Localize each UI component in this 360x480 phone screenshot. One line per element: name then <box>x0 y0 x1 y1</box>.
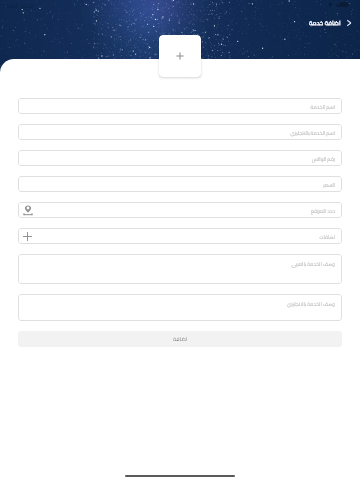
staticText: اسم الخدمة بالانجليزي <box>290 128 335 137</box>
staticText: رقم الواتس <box>311 154 335 163</box>
staticText: حدد الموقع <box>310 206 335 215</box>
staticText: اسم الخدمة <box>310 102 335 111</box>
button[interactable]: اضافة <box>18 331 342 347</box>
button[interactable]: وصف الخدمة بالانجليزي <box>18 294 342 321</box>
staticText: اضافة خدمة <box>309 17 341 29</box>
staticText: 10:45 الثلاثاء <box>6 1 34 10</box>
button[interactable]: رقم الواتس <box>18 150 342 166</box>
button[interactable]: وصف الخدمة بالعربي <box>18 254 342 284</box>
button[interactable]: حدد الموقع <box>18 202 342 218</box>
button[interactable]: Add image <box>159 35 201 77</box>
button[interactable]: اسم الخدمة <box>18 98 342 114</box>
staticText: اضافات <box>319 232 335 241</box>
staticText: اضافة <box>173 334 188 344</box>
staticText: وصف الخدمة بالانجليزي <box>286 299 335 308</box>
button[interactable]: اضافة خدمة <box>309 17 353 29</box>
button[interactable]: السعر <box>18 176 342 192</box>
staticText: وصف الخدمة بالعربي <box>291 259 335 268</box>
button[interactable]: اسم الخدمة بالانجليزي <box>18 124 342 140</box>
staticText: السعر <box>323 180 335 189</box>
button[interactable]: اضافات <box>18 228 342 244</box>
